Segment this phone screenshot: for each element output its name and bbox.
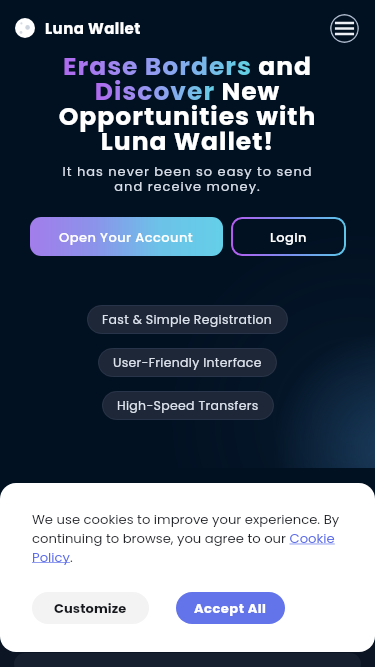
staticText: User-Friendly Interface	[113, 354, 262, 371]
staticText: Erase Borders and Discover New Opportuni…	[10, 49, 365, 159]
staticText: Luna Wallet	[45, 18, 141, 39]
staticText: Open Your Account	[59, 228, 194, 246]
button[interactable]: User-Friendly Interface	[98, 348, 277, 377]
staticText: It has never been so easy to send and re…	[0, 162, 375, 196]
staticText: Fast & Simple Registration	[102, 311, 273, 328]
button[interactable]: Fast & Simple Registration	[87, 305, 288, 334]
button[interactable]: Login	[231, 217, 346, 256]
staticText: We use cookies to improve your experienc…	[32, 510, 345, 566]
staticText: High-Speed Transfers	[117, 397, 259, 414]
button[interactable]: High-Speed Transfers	[102, 391, 274, 420]
button[interactable]: Menu	[330, 14, 359, 43]
staticText: Login	[270, 228, 307, 246]
button[interactable]: Accept All	[176, 592, 285, 624]
staticText: Customize	[54, 599, 127, 617]
button[interactable]: Open Your Account	[30, 217, 223, 256]
staticText: Accept All	[194, 599, 267, 617]
button[interactable]: Customize	[32, 592, 149, 624]
